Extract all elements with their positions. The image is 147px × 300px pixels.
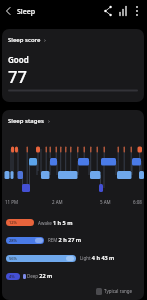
button[interactable] xyxy=(2,3,16,19)
staticText: Awake 1 h 5 m xyxy=(38,219,73,226)
staticText: 12% xyxy=(9,220,17,225)
button[interactable]: 28% xyxy=(6,237,44,244)
staticText: 28% xyxy=(9,238,17,243)
staticText: Typical range xyxy=(104,288,133,294)
staticText: 6:08 xyxy=(133,199,142,205)
staticText: › xyxy=(44,36,46,44)
staticText: 56% xyxy=(9,256,17,261)
button[interactable]: 56% xyxy=(6,255,76,262)
staticText: Deep 22 m xyxy=(27,272,53,279)
staticText: › xyxy=(48,117,50,125)
button[interactable]: 4% xyxy=(6,273,20,280)
staticText: 2 AM xyxy=(52,199,63,205)
staticText: 77 xyxy=(8,65,27,87)
staticText: REM 2 h 27 m xyxy=(48,236,82,243)
staticText: 11 PM xyxy=(5,199,19,205)
button[interactable] xyxy=(132,4,142,18)
staticText: Light 4 h 43 m xyxy=(80,254,115,261)
staticText: Sleep stages xyxy=(8,117,44,125)
staticText: 5 AM xyxy=(100,199,111,205)
staticText: Good xyxy=(8,54,29,65)
button[interactable] xyxy=(117,4,129,18)
staticText: Sleep score xyxy=(8,36,41,44)
button[interactable]: 12% xyxy=(6,219,34,226)
staticText: 4% xyxy=(9,274,15,279)
staticText: Sleep xyxy=(17,7,36,17)
button[interactable] xyxy=(102,4,114,18)
button[interactable]: Sleep score xyxy=(2,29,144,102)
